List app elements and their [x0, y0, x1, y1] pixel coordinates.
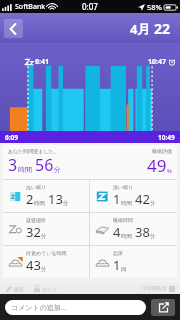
button[interactable]: 起床	[90, 246, 177, 278]
button[interactable]: 就寝場所	[3, 213, 89, 245]
staticText: 6:41	[35, 57, 49, 67]
staticText: コメントの追加...	[11, 303, 67, 313]
staticText: 回	[121, 266, 127, 273]
staticText: 13	[48, 190, 63, 208]
staticText: 分	[150, 200, 156, 207]
button[interactable]: Share	[151, 299, 175, 316]
staticText: 4月	[130, 20, 151, 38]
button[interactable]: 目覚めている時間	[3, 246, 89, 278]
staticText: 2	[26, 190, 34, 208]
staticText: あなた時間寝ました。	[8, 148, 59, 154]
button[interactable]: ロック	[34, 285, 58, 292]
staticText: 56	[35, 154, 54, 176]
staticText: %	[167, 167, 172, 175]
staticText: 1	[113, 256, 121, 274]
staticText: 目覚めている時間	[26, 250, 67, 256]
staticText: 睡眠評価	[152, 148, 172, 154]
button[interactable]: コメントの追加...	[5, 300, 146, 315]
staticText: 時間	[18, 165, 32, 174]
button[interactable]: 深い眠り	[90, 180, 177, 212]
staticText: 分	[54, 165, 61, 174]
button[interactable]: あなた時間寝ました。	[3, 145, 177, 179]
staticText: 10:47	[148, 57, 166, 67]
staticText: 12時間表示	[141, 285, 167, 292]
staticText: 起床	[113, 250, 123, 256]
staticText: 睡眠時間	[113, 217, 133, 223]
staticText: 時間	[121, 200, 132, 207]
staticText: 22	[154, 19, 171, 38]
staticText: 分	[63, 200, 69, 207]
staticText: 42	[135, 190, 150, 208]
staticText: 0:07	[82, 1, 98, 12]
staticText: 43	[26, 256, 41, 274]
staticText: 32	[26, 223, 41, 241]
staticText: 就寝場所	[26, 217, 46, 223]
staticText: 58%	[147, 2, 162, 12]
staticText: SoftBank	[15, 2, 46, 12]
staticText: 6:09	[5, 133, 18, 142]
staticText: 3	[8, 154, 18, 176]
staticText: 38	[135, 223, 150, 241]
staticText: 編集	[14, 286, 24, 292]
staticText: 時間	[34, 200, 45, 207]
staticText: 深い眠り	[113, 184, 134, 190]
button[interactable]: Back	[4, 19, 23, 38]
staticText: 浅い眠り	[26, 184, 47, 190]
staticText: 1	[113, 190, 121, 208]
staticText: 時間	[121, 233, 132, 240]
staticText: 分	[41, 266, 47, 273]
button[interactable]: 睡眠時間	[90, 213, 177, 245]
button[interactable]: 浅い眠り	[3, 180, 89, 212]
staticText: 4	[113, 223, 121, 241]
staticText: 10:49	[158, 133, 175, 142]
staticText: 分	[150, 233, 156, 240]
staticText: ロック	[42, 286, 58, 292]
staticText: 49	[147, 154, 167, 177]
button[interactable]: 12時間表示	[141, 285, 175, 292]
button[interactable]: 編集	[5, 285, 24, 292]
staticText: 分	[41, 233, 47, 240]
